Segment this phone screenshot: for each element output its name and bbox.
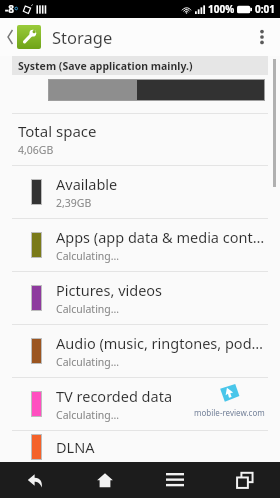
staticText: System (Save application mainly.) [18,59,193,73]
button[interactable]: Apps (app data & media cont… [0,219,280,271]
staticText: 4,06GB [18,143,54,157]
button[interactable]: Audio (music, ringtones, pod… [0,325,280,377]
button[interactable]: Pictures, videos [0,272,280,324]
staticText: Calculating… [56,355,120,369]
button[interactable]: Available [0,166,280,218]
staticText: mobile-review.com [194,407,265,418]
staticText: 100% [208,2,235,16]
button[interactable]: DLNA [0,431,280,462]
button[interactable]: TV recorded data [0,378,280,430]
staticText: Calculating… [56,302,120,316]
button[interactable]: Recents [210,462,280,498]
staticText: -8 [5,2,14,16]
staticText: 2,39GB [56,196,92,210]
staticText: 0:01 [255,2,275,16]
button[interactable]: Back [4,25,44,49]
staticText: Audio (music, ringtones, pod… [56,333,264,353]
staticText: Calculating… [56,249,120,263]
button[interactable]: More options [250,18,274,56]
staticText: Apps (app data & media cont… [56,227,265,247]
button[interactable]: Back [0,462,70,498]
staticText: Total space [18,121,97,141]
button[interactable]: Total space [0,114,280,165]
staticText: DLNA [56,437,95,457]
button[interactable]: Menu [140,462,210,498]
staticText: Calculating… [56,408,120,422]
staticText: Available [56,174,118,194]
button[interactable]: Home [70,462,140,498]
staticText: TV recorded data [56,386,173,406]
staticText: Storage [52,26,113,48]
staticText: Pictures, videos [56,280,163,300]
